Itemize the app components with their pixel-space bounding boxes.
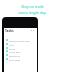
- staticText: Stay on track: [21, 4, 44, 9]
- button[interactable]: Write spec: [4, 49, 37, 53]
- staticText: every single day.: [18, 10, 47, 15]
- staticText: Write spec: [9, 50, 21, 53]
- button[interactable]: Review PR: [4, 53, 37, 57]
- staticText: Plan week: [9, 58, 21, 61]
- staticText: Tasks: [5, 29, 14, 33]
- staticText: Email: [9, 47, 16, 50]
- button[interactable]: Design review mtg: [4, 38, 37, 42]
- button[interactable]: Gym: [4, 42, 37, 46]
- button[interactable]: Plan week: [4, 57, 37, 61]
- staticText: Design review mtg: [9, 39, 30, 42]
- staticText: Gym: [9, 43, 15, 46]
- staticText: Review PR: [9, 54, 21, 57]
- button[interactable]: Email: [4, 46, 37, 50]
